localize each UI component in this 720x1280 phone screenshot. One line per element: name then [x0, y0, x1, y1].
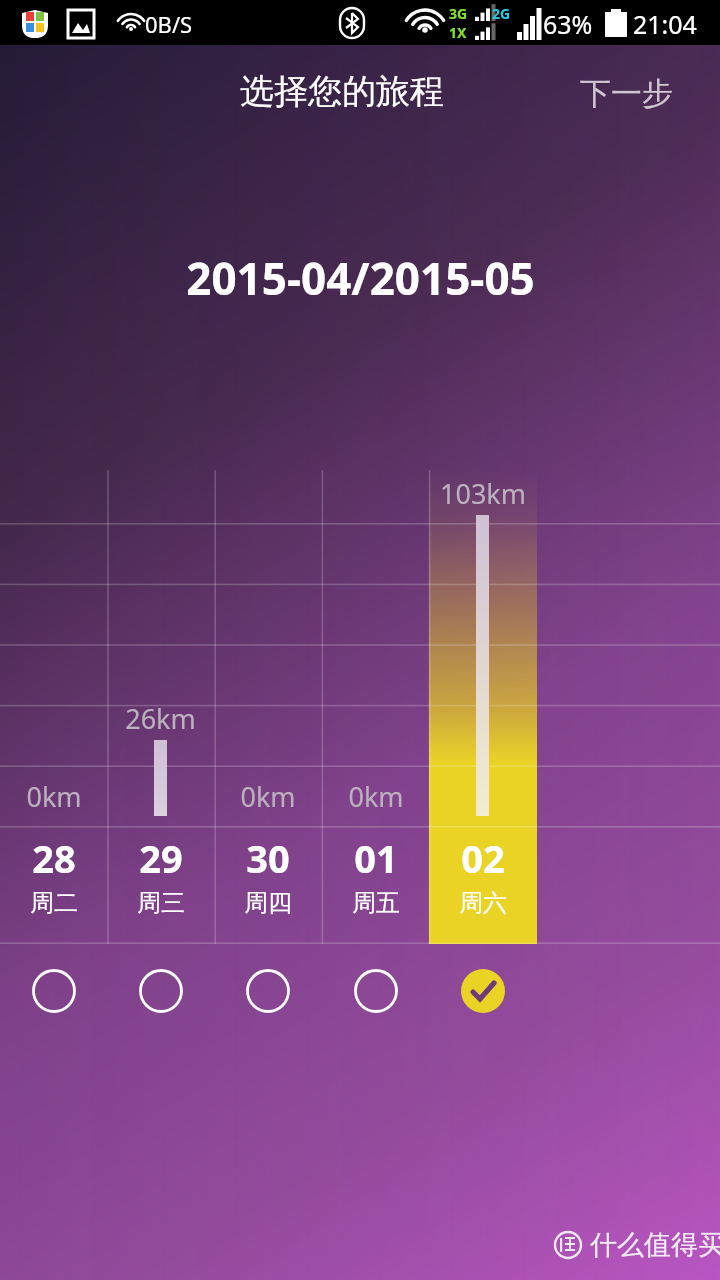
staticText: 周四 [244, 888, 292, 918]
button[interactable]: 0km [0, 470, 107, 944]
staticText: 29 [139, 832, 183, 884]
staticText: 0km [26, 778, 82, 815]
staticText: 28 [32, 832, 76, 884]
button[interactable]: Select day [214, 944, 321, 1040]
button[interactable]: Select day [0, 944, 107, 1040]
staticText: 01 [354, 832, 398, 884]
staticText: 3G [449, 4, 468, 23]
staticText: 周二 [30, 888, 78, 918]
button[interactable]: 下一步 [576, 70, 677, 117]
staticText: 26km [125, 700, 196, 737]
staticText: 30 [246, 832, 290, 884]
staticText: 21:04 [633, 7, 697, 41]
staticText: 周六 [459, 888, 507, 918]
staticText: 2015-04/2015-05 [186, 248, 535, 308]
staticText: 选择您的旅程 [240, 70, 444, 113]
button[interactable]: Select day [107, 944, 214, 1040]
button[interactable]: Select day [322, 944, 429, 1040]
staticText: 0km [240, 778, 296, 815]
button[interactable]: 0km [214, 470, 321, 944]
staticText: 0km [348, 778, 404, 815]
staticText: 103km [440, 475, 526, 512]
staticText: 63% [543, 7, 593, 41]
button[interactable]: 选择您的旅程 [238, 68, 446, 115]
staticText: 2G [492, 4, 511, 23]
button[interactable]: 0km [322, 470, 429, 944]
staticText: 0B/S [145, 9, 193, 39]
staticText: 什么值得买 [590, 1228, 720, 1262]
staticText: 周三 [137, 888, 185, 918]
staticText: 02 [461, 832, 505, 884]
staticText: 下一步 [580, 74, 673, 113]
button[interactable]: 103km [429, 470, 536, 944]
button[interactable]: 26km [107, 470, 214, 944]
button[interactable]: Selected day [429, 944, 536, 1040]
staticText: 1X [449, 23, 467, 42]
staticText: 周五 [352, 888, 400, 918]
